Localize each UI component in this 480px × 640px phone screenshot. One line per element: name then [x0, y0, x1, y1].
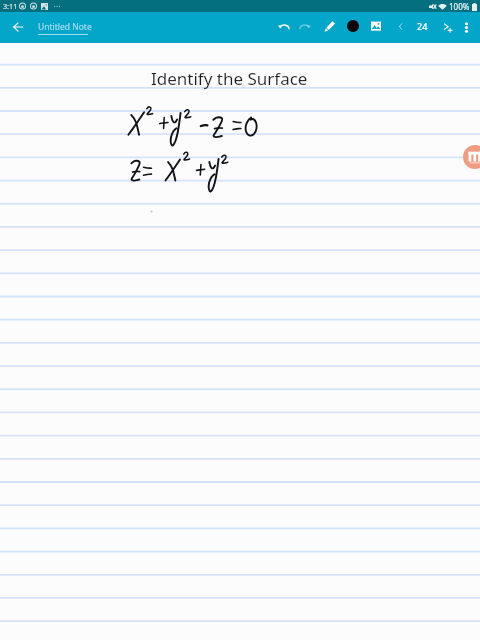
- button[interactable]: Untitled Note: [38, 21, 92, 35]
- button[interactable]: Page 24: [411, 15, 433, 36]
- button[interactable]: Pen: [319, 15, 341, 37]
- staticText: Identify the Surface: [151, 67, 308, 90]
- button[interactable]: Back: [7, 16, 28, 37]
- button[interactable]: Undo: [273, 15, 295, 37]
- staticText: 24: [417, 20, 428, 32]
- button[interactable]: Redo: [294, 15, 316, 37]
- staticText: Untitled Note: [38, 21, 92, 33]
- button[interactable]: Watermark: [463, 145, 480, 169]
- staticText: 100%: [449, 1, 470, 12]
- button[interactable]: Insert image: [365, 15, 387, 37]
- button[interactable]: Ink colour: [342, 15, 364, 37]
- button[interactable]: Previous page: [389, 15, 411, 37]
- button[interactable]: More options: [455, 16, 477, 38]
- button[interactable]: Add page: [436, 16, 458, 38]
- staticText: 3:11: [3, 1, 18, 11]
